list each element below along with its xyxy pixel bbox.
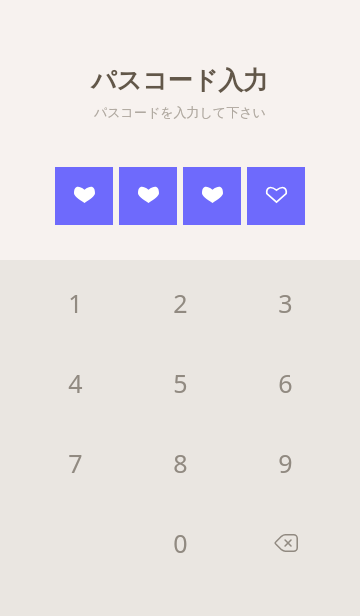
button[interactable]: 5 <box>128 343 233 423</box>
button[interactable]: Entered digit <box>183 167 241 225</box>
button[interactable]: 8 <box>128 423 233 503</box>
button[interactable]: 4 <box>23 343 128 423</box>
button[interactable]: 0 <box>128 503 233 583</box>
staticText: 5 <box>173 366 188 400</box>
staticText: 2 <box>173 286 188 320</box>
button[interactable]: 1 <box>23 263 128 343</box>
button[interactable]: Entered digit <box>55 167 113 225</box>
button[interactable]: Backspace <box>233 503 338 583</box>
button[interactable]: Entered digit <box>119 167 177 225</box>
button[interactable]: 3 <box>233 263 338 343</box>
staticText: 0 <box>173 526 188 560</box>
staticText: 4 <box>68 366 83 400</box>
staticText: 1 <box>68 286 83 320</box>
staticText: 6 <box>278 366 293 400</box>
staticText: 3 <box>278 286 293 320</box>
button[interactable]: 2 <box>128 263 233 343</box>
staticText: 8 <box>173 446 188 480</box>
button[interactable]: 9 <box>233 423 338 503</box>
staticText: パスコードを入力して下さい <box>94 104 266 120</box>
staticText: 7 <box>68 446 83 480</box>
staticText: 9 <box>278 446 293 480</box>
staticText: パスコード入力 <box>91 65 269 96</box>
button[interactable]: Empty digit <box>247 167 305 225</box>
button[interactable]: 6 <box>233 343 338 423</box>
button[interactable]: 7 <box>23 423 128 503</box>
